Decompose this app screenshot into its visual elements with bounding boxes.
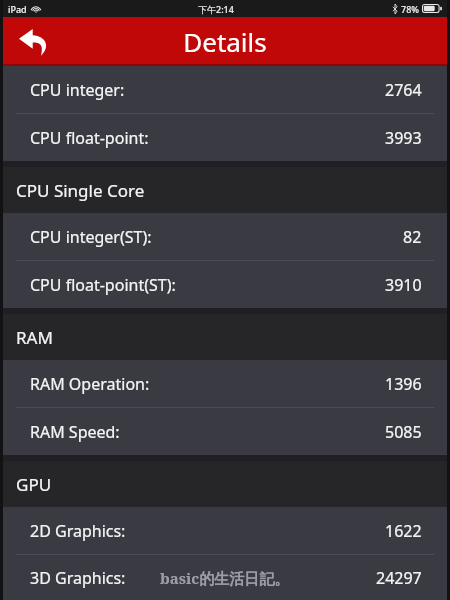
button[interactable]: 3D Graphics: xyxy=(0,555,450,600)
staticText: 3993 xyxy=(385,127,422,149)
staticText: CPU float-point: xyxy=(30,127,149,149)
staticText: GPU xyxy=(16,473,52,496)
staticText: CPU float-point(ST): xyxy=(30,274,176,296)
staticText: 下午2:14 xyxy=(198,3,234,15)
staticText: Details xyxy=(183,24,267,59)
button[interactable]: CPU float-point: xyxy=(0,114,450,161)
staticText: 24297 xyxy=(376,567,422,589)
staticText: iPad xyxy=(8,3,27,15)
staticText: 3D Graphics: xyxy=(30,567,126,589)
staticText: RAM Speed: xyxy=(30,421,120,443)
staticText: 1396 xyxy=(385,373,422,395)
button[interactable]: CPU integer(ST): xyxy=(0,213,450,260)
button[interactable]: CPU integer: xyxy=(0,66,450,113)
staticText: RAM Operation: xyxy=(30,373,150,395)
staticText: CPU integer: xyxy=(30,79,125,101)
button[interactable]: RAM Speed: xyxy=(0,408,450,455)
staticText: 2D Graphics: xyxy=(30,520,126,542)
staticText: 3910 xyxy=(385,274,422,296)
button[interactable]: 2D Graphics: xyxy=(0,507,450,554)
staticText: CPU Single Core xyxy=(16,179,145,202)
staticText: CPU integer(ST): xyxy=(30,226,152,248)
staticText: 2764 xyxy=(385,79,422,101)
button[interactable]: Back xyxy=(8,20,60,64)
staticText: basic的生活日記。 xyxy=(160,568,290,588)
button[interactable]: CPU float-point(ST): xyxy=(0,261,450,308)
staticText: RAM xyxy=(16,326,53,349)
staticText: 82 xyxy=(403,226,422,248)
staticText: 78% xyxy=(401,3,419,15)
staticText: 1622 xyxy=(385,520,422,542)
staticText: 5085 xyxy=(385,421,422,443)
button[interactable]: RAM Operation: xyxy=(0,360,450,407)
